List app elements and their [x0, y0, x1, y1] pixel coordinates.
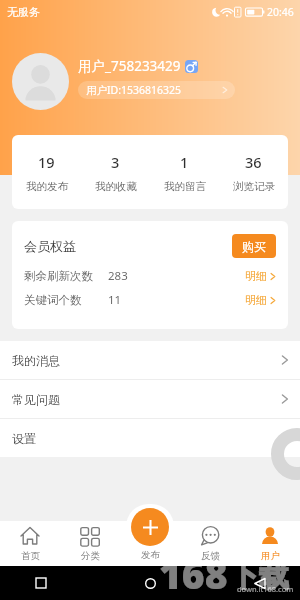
staticText: 剩余刷新次数: [24, 269, 108, 283]
staticText: 购买: [242, 239, 266, 254]
button[interactable]: 我的消息: [0, 341, 300, 379]
button[interactable]: 用户ID:1536816325: [78, 81, 235, 99]
button[interactable]: 36: [219, 135, 288, 209]
staticText: 我的收藏: [95, 180, 137, 193]
staticText: 36: [245, 152, 262, 172]
staticText: 分类: [81, 550, 100, 562]
button[interactable]: 3: [81, 135, 150, 209]
staticText: 3: [111, 152, 120, 172]
staticText: 283: [108, 268, 128, 284]
staticText: 反馈: [201, 550, 220, 562]
button[interactable]: 设置: [0, 419, 300, 457]
staticText: 168: [159, 547, 228, 600]
staticText: 无服务: [7, 5, 40, 19]
button[interactable]: 头像: [12, 53, 69, 110]
staticText: 我的发布: [26, 180, 68, 193]
staticText: 明细: [245, 293, 267, 307]
button[interactable]: Recents: [30, 572, 52, 594]
staticText: 我的留言: [164, 180, 206, 193]
button[interactable]: Home: [139, 572, 161, 594]
staticText: down.it168.com: [237, 584, 300, 594]
staticText: 浏览记录: [233, 180, 275, 193]
staticText: 常见问题: [12, 392, 60, 407]
staticText: 设置: [12, 431, 36, 446]
staticText: 发布: [141, 549, 160, 561]
staticText: 我的消息: [12, 353, 60, 368]
button[interactable]: 购买: [232, 234, 276, 258]
staticText: 1: [180, 152, 189, 172]
staticText: 11: [108, 292, 122, 308]
button[interactable]: 发布: [120, 521, 180, 566]
staticText: 明细: [245, 269, 267, 283]
button[interactable]: Back: [248, 572, 270, 594]
button[interactable]: 用户: [240, 521, 300, 566]
button[interactable]: 1: [150, 135, 219, 209]
staticText: 关键词个数: [24, 293, 108, 307]
button[interactable]: 剩余刷新次数: [24, 264, 276, 288]
button[interactable]: 分类: [60, 521, 120, 566]
staticText: 首页: [21, 550, 40, 562]
button[interactable]: 19: [12, 135, 81, 209]
button[interactable]: 反馈: [180, 521, 240, 566]
button[interactable]: 首页: [0, 521, 60, 566]
staticText: 用户_758233429: [78, 57, 181, 75]
button[interactable]: 关键词个数: [24, 288, 276, 312]
button[interactable]: 常见问题: [0, 380, 300, 418]
staticText: 会员权益: [24, 238, 76, 254]
staticText: 20:46: [267, 5, 294, 19]
staticText: 用户ID:1536816325: [86, 83, 182, 97]
staticText: 19: [38, 152, 55, 172]
button[interactable]: 发布: [131, 508, 169, 546]
staticText: 用户: [261, 550, 280, 562]
staticText: 下载: [229, 557, 289, 595]
